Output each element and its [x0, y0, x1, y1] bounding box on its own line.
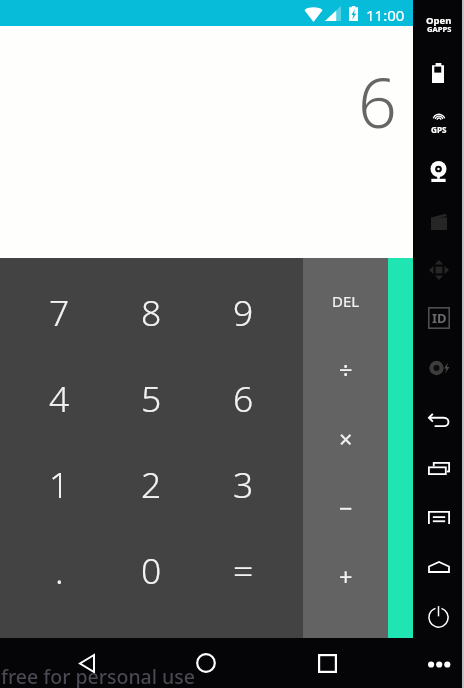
button[interactable]: Recents	[302, 638, 352, 688]
button[interactable]: 6	[197, 355, 289, 441]
button[interactable]: 7	[13, 269, 105, 355]
staticText: .	[55, 546, 64, 594]
staticText: 11:00	[366, 5, 405, 25]
staticText: 5	[141, 374, 162, 422]
staticText: −	[339, 492, 353, 524]
button[interactable]: Direction pad	[428, 259, 450, 281]
staticText: 3	[233, 460, 254, 508]
staticText: GPS	[431, 124, 447, 135]
button[interactable]: 8	[105, 269, 197, 355]
staticText: ×	[339, 423, 353, 455]
button[interactable]: ÷	[303, 335, 388, 404]
button[interactable]: Home	[428, 561, 450, 573]
staticText: 6	[358, 55, 397, 148]
staticText: ÷	[339, 354, 353, 386]
button[interactable]: Back	[62, 638, 112, 688]
staticText: 8	[141, 288, 162, 336]
staticText: +	[339, 561, 353, 593]
staticText: ID	[432, 309, 447, 327]
button[interactable]: 4	[13, 355, 105, 441]
staticText: free for personal use	[1, 663, 196, 688]
staticText: 1	[49, 460, 70, 508]
button[interactable]: ×	[303, 404, 388, 473]
staticText: =	[233, 546, 254, 594]
button[interactable]: Overview	[428, 462, 450, 475]
button[interactable]: DEL	[303, 266, 388, 335]
button[interactable]: 1	[13, 441, 105, 527]
staticText: 0	[141, 546, 162, 594]
staticText: 7	[49, 288, 70, 336]
button[interactable]: 5	[105, 355, 197, 441]
staticText: Open	[426, 14, 452, 27]
staticText: 2	[141, 460, 162, 508]
button[interactable]: Camera	[430, 160, 447, 182]
button[interactable]: Snapshot	[428, 358, 450, 378]
button[interactable]: Battery	[433, 63, 445, 83]
button[interactable]: More	[428, 660, 450, 669]
button[interactable]: Open	[426, 14, 452, 34]
button[interactable]: 0	[105, 527, 197, 613]
button[interactable]: Back	[428, 413, 450, 427]
staticText: 9	[233, 288, 254, 336]
button[interactable]: 3	[197, 441, 289, 527]
button[interactable]: Home	[181, 638, 231, 688]
staticText: 4	[49, 374, 70, 422]
button[interactable]: Device ID	[428, 307, 450, 329]
button[interactable]: 2	[105, 441, 197, 527]
button[interactable]: −	[303, 473, 388, 542]
staticText: GAPPS	[427, 24, 452, 34]
button[interactable]: Power	[428, 607, 449, 628]
button[interactable]: +	[303, 542, 388, 611]
button[interactable]: 9	[197, 269, 289, 355]
button[interactable]: =	[197, 527, 289, 613]
button[interactable]: Menu	[428, 511, 450, 524]
button[interactable]: Record	[431, 212, 447, 230]
staticText: DEL	[332, 291, 360, 311]
button[interactable]: GPS	[431, 113, 447, 135]
staticText: 6	[233, 374, 254, 422]
button[interactable]: .	[13, 527, 105, 613]
